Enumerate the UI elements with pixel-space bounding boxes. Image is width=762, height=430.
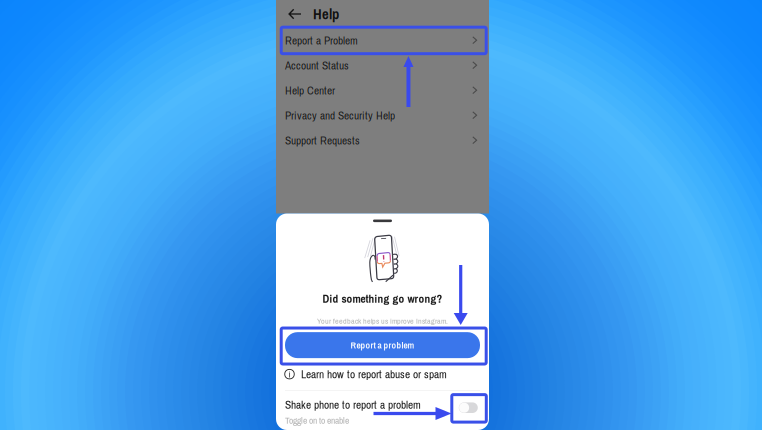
staticText: Report a Problem bbox=[285, 33, 358, 48]
staticText: Learn how to report abuse or spam bbox=[301, 366, 447, 382]
button[interactable]: Help Center bbox=[276, 78, 489, 103]
staticText: Support Requests bbox=[285, 133, 360, 148]
button[interactable]: Shake phone to report a problem toggle bbox=[459, 402, 478, 413]
staticText: Help Center bbox=[285, 83, 335, 98]
button[interactable]: i bbox=[276, 364, 489, 384]
button[interactable]: Report a problem bbox=[285, 332, 480, 358]
button[interactable]: Support Requests bbox=[276, 128, 489, 153]
staticText: Shake phone to report a problem bbox=[285, 397, 421, 412]
button[interactable]: Back bbox=[284, 1, 306, 27]
staticText: Account Status bbox=[285, 58, 349, 73]
staticText: Privacy and Security Help bbox=[285, 108, 395, 123]
button[interactable]: Privacy and Security Help bbox=[276, 103, 489, 128]
staticText: i bbox=[288, 368, 290, 380]
button[interactable]: Report a Problem bbox=[276, 28, 489, 53]
staticText: Your feedback helps us improve Instagram… bbox=[317, 315, 448, 326]
staticText: Report a problem bbox=[350, 339, 414, 351]
staticText: Toggle on to enable bbox=[285, 414, 349, 427]
button[interactable]: Account Status bbox=[276, 53, 489, 78]
staticText: Help bbox=[313, 4, 339, 24]
staticText: Did something go wrong? bbox=[322, 291, 442, 306]
